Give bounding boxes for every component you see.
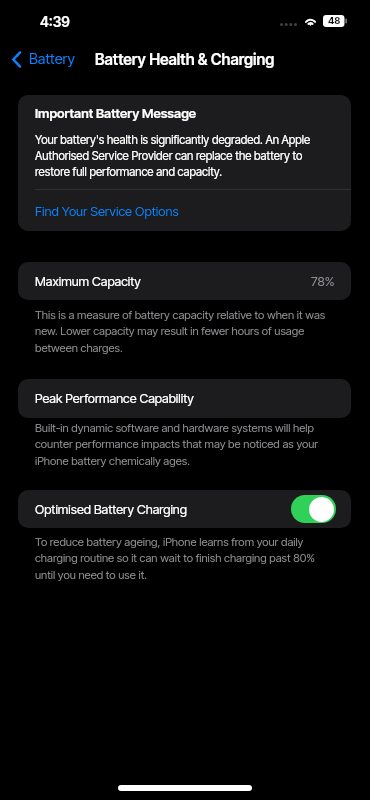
- staticText: Battery Health & Charging: [95, 50, 275, 69]
- button[interactable]: Battery: [0, 43, 86, 75]
- other: Optimised Battery Charging toggle: [291, 495, 336, 523]
- button[interactable]: Maximum Capacity: [18, 262, 351, 300]
- staticText: 4:39: [40, 13, 70, 30]
- button[interactable]: Peak Performance Capability: [18, 379, 351, 418]
- staticText: Important Battery Message: [35, 105, 197, 121]
- staticText: Find Your Service Options: [35, 203, 179, 219]
- staticText: Peak Performance Capability: [35, 391, 194, 406]
- staticText: Built-in dynamic software and hardware s…: [35, 421, 334, 468]
- button[interactable]: Find Your Service Options: [18, 190, 351, 231]
- button[interactable]: Optimised Battery Charging: [18, 490, 351, 528]
- staticText: 78%: [311, 274, 335, 289]
- staticText: Maximum Capacity: [35, 274, 141, 289]
- staticText: Battery: [29, 50, 76, 68]
- staticText: This is a measure of battery capacity re…: [35, 308, 334, 355]
- staticText: 48: [328, 15, 341, 27]
- staticText: To reduce battery ageing, iPhone learns …: [35, 535, 334, 582]
- staticText: Optimised Battery Charging: [35, 502, 187, 517]
- staticText: Your battery's health is significantly d…: [35, 133, 335, 179]
